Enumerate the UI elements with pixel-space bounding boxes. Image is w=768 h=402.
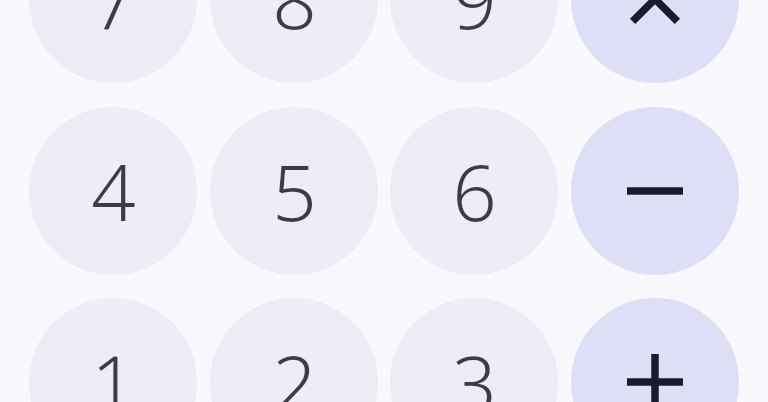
button[interactable]: 3 xyxy=(390,298,558,402)
button[interactable]: 4 xyxy=(29,107,197,275)
button[interactable]: 7 xyxy=(29,0,197,83)
staticText: 2 xyxy=(272,329,317,402)
staticText: 5 xyxy=(272,138,317,244)
button[interactable]: Multiply xyxy=(571,0,739,83)
staticText: 3 xyxy=(452,329,497,402)
staticText: 7 xyxy=(91,0,136,52)
staticText: 4 xyxy=(91,138,136,244)
button[interactable]: 1 xyxy=(29,298,197,402)
button[interactable]: 8 xyxy=(210,0,378,83)
button[interactable]: 9 xyxy=(390,0,558,83)
button[interactable]: Minus xyxy=(571,107,739,275)
button[interactable]: 2 xyxy=(210,298,378,402)
staticText: 6 xyxy=(452,138,497,244)
staticText: 8 xyxy=(272,0,317,52)
button[interactable]: 6 xyxy=(390,107,558,275)
staticText: 9 xyxy=(452,0,497,52)
button[interactable]: 5 xyxy=(210,107,378,275)
staticText: 1 xyxy=(91,329,136,402)
button[interactable]: Plus xyxy=(571,298,739,402)
